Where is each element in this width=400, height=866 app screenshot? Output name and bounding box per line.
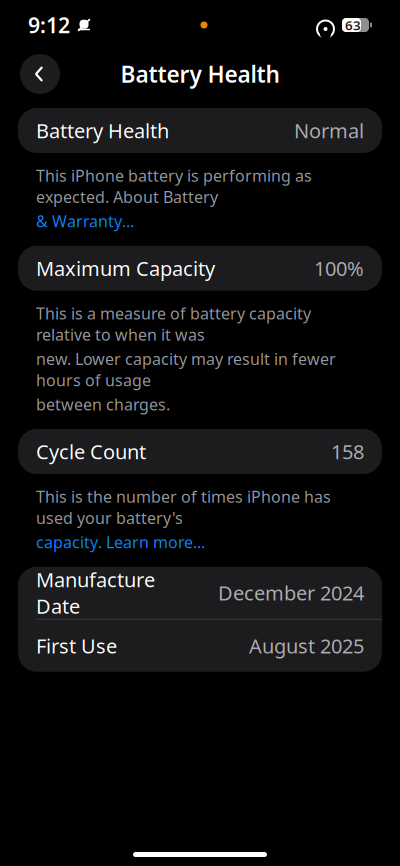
button[interactable]: Cycle Count [18,429,382,474]
staticText: December 2024 [218,579,364,606]
staticText: capacity. Learn more... [36,531,205,553]
staticText: This iPhone battery is performing as exp… [36,165,312,207]
staticText: Manufacture Date [36,566,155,619]
staticText: August 2025 [249,632,364,659]
button[interactable]: Battery Health [18,108,382,153]
staticText: new. Lower capacity may result in fewer … [36,348,336,391]
staticText: 100% [314,255,364,282]
staticText: between charges. [36,394,170,415]
button[interactable]: First Use [18,620,382,672]
staticText: 9:12 [28,11,70,39]
staticText: This is a measure of battery capacity re… [36,303,311,345]
button[interactable]: Manufacture Date [18,567,382,619]
button[interactable]: Maximum Capacity [18,246,382,291]
staticText: 158 [331,438,364,465]
staticText: Cycle Count [36,438,146,465]
staticText: & Warranty... [36,210,134,232]
staticText: Normal [294,117,364,144]
button[interactable]: Back [20,54,60,94]
staticText: First Use [36,632,117,659]
staticText: Battery Health [36,117,169,144]
staticText: Battery Health [120,59,279,89]
staticText: Maximum Capacity [36,255,215,282]
staticText: 63 [345,16,361,34]
staticText: This is the number of times iPhone has u… [36,486,331,528]
